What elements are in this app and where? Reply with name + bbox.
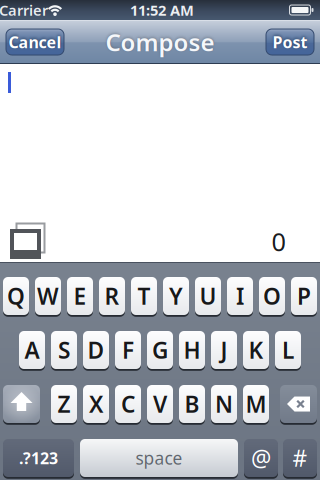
button[interactable]: V [147, 385, 173, 425]
staticText: R [104, 281, 119, 311]
button[interactable]: Q [3, 277, 29, 317]
staticText: Carrier [0, 0, 48, 20]
button[interactable]: Y [163, 277, 189, 317]
staticText: Post [272, 31, 307, 53]
button[interactable]: N [211, 385, 237, 425]
staticText: J [220, 335, 227, 365]
button[interactable]: F [115, 331, 141, 371]
button[interactable]: @ [244, 439, 278, 479]
button[interactable]: W [35, 277, 61, 317]
staticText: C [121, 389, 135, 419]
button[interactable]: Add Photo [9, 223, 49, 261]
button[interactable]: Delete [280, 385, 317, 425]
button[interactable]: X [83, 385, 109, 425]
staticText: S [58, 335, 70, 365]
staticText: P [297, 281, 311, 311]
staticText: Cancel [8, 31, 61, 53]
staticText: .?123 [19, 447, 58, 469]
staticText: Q [7, 281, 25, 311]
button[interactable]: # [283, 439, 317, 479]
button[interactable]: T [131, 277, 157, 317]
staticText: @ [251, 443, 271, 473]
button[interactable]: K [243, 331, 269, 371]
button[interactable]: D [83, 331, 109, 371]
button[interactable]: G [147, 331, 173, 371]
button[interactable]: M [243, 385, 269, 425]
button[interactable]: I [227, 277, 253, 317]
staticText: Y [169, 281, 183, 311]
staticText: space [135, 446, 182, 469]
button[interactable]: A [19, 331, 45, 371]
staticText: K [248, 335, 263, 365]
staticText: B [184, 389, 199, 419]
staticText: N [215, 389, 233, 419]
button[interactable]: S [51, 331, 77, 371]
button[interactable]: E [67, 277, 93, 317]
staticText: A [24, 335, 39, 365]
button[interactable]: U [195, 277, 221, 317]
staticText: M [245, 389, 266, 419]
button[interactable]: L [275, 331, 301, 371]
staticText: E [73, 281, 86, 311]
button[interactable]: Shift [3, 385, 40, 425]
staticText: W [37, 281, 59, 311]
staticText: F [122, 335, 134, 365]
button[interactable]: R [99, 277, 125, 317]
staticText: L [282, 335, 294, 365]
staticText: I [236, 281, 244, 311]
button[interactable]: H [179, 331, 205, 371]
button[interactable]: P [291, 277, 317, 317]
staticText: U [199, 281, 216, 311]
button[interactable]: Z [51, 385, 77, 425]
staticText: G [152, 335, 168, 365]
button[interactable]: Cancel [6, 29, 64, 55]
staticText: H [183, 335, 200, 365]
button[interactable]: .?123 [3, 439, 74, 479]
staticText: V [153, 389, 167, 419]
button[interactable]: space [80, 439, 238, 479]
staticText: 11:52 AM [130, 0, 194, 20]
button[interactable]: O [259, 277, 285, 317]
staticText: O [263, 281, 281, 311]
button[interactable]: B [179, 385, 205, 425]
staticText: Compose [105, 26, 214, 58]
button[interactable]: J [211, 331, 237, 371]
button[interactable]: C [115, 385, 141, 425]
staticText: 0 [271, 225, 285, 258]
staticText: Z [57, 389, 70, 419]
staticText: D [87, 335, 104, 365]
staticText: T [137, 281, 150, 311]
button[interactable]: Post [266, 29, 314, 55]
staticText: X [89, 389, 103, 419]
staticText: # [292, 443, 307, 473]
